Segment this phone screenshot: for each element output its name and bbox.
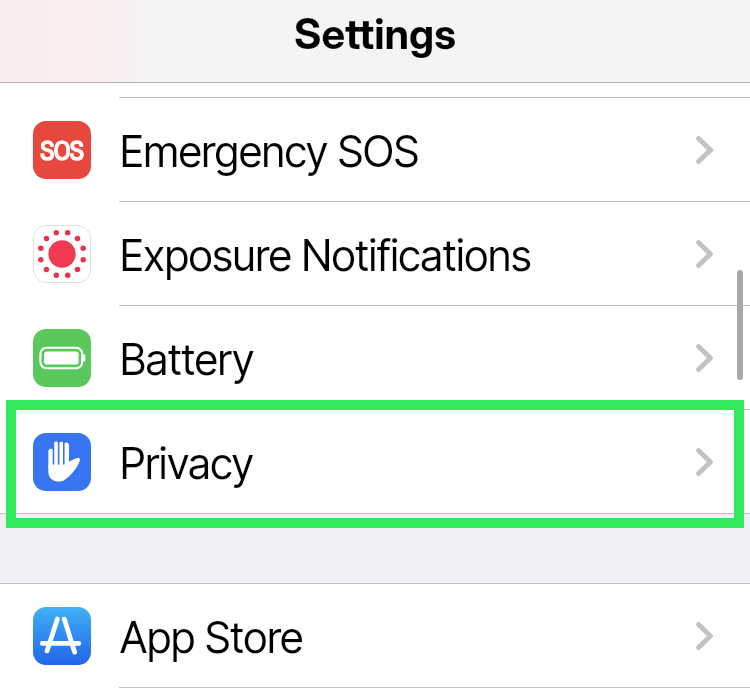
- button[interactable]: Battery: [0, 306, 750, 410]
- staticText: Battery: [120, 334, 255, 386]
- other: Open Privacy: [696, 448, 713, 476]
- other: Open App Store: [696, 622, 713, 650]
- other: Open Battery: [696, 344, 713, 372]
- staticText: App Store: [120, 612, 304, 664]
- staticText: Privacy: [120, 438, 254, 490]
- button[interactable]: App Store: [0, 584, 750, 688]
- button[interactable]: Exposure Notifications: [0, 202, 750, 306]
- button[interactable]: Privacy: [0, 410, 750, 514]
- other: Open Emergency SOS: [696, 136, 713, 164]
- other: Open Exposure Notifications: [696, 240, 713, 268]
- staticText: SOS: [40, 132, 84, 168]
- staticText: Emergency SOS: [120, 126, 419, 178]
- button[interactable]: SOS: [0, 98, 750, 202]
- staticText: Settings: [294, 8, 457, 59]
- staticText: Exposure Notifications: [120, 230, 532, 282]
